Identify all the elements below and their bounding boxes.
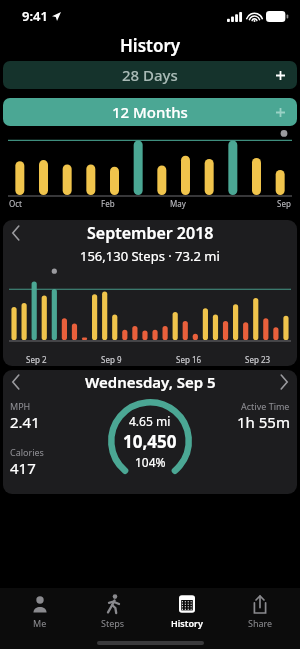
staticText: Active Time: [241, 400, 290, 412]
staticText: 2.41: [10, 412, 40, 432]
staticText: Sep 23: [245, 354, 271, 365]
button[interactable]: Previous month: [3, 220, 29, 246]
staticText: 156,130 Steps · 73.2 mi: [80, 247, 220, 265]
staticText: September 2018: [87, 222, 214, 244]
staticText: History: [171, 617, 203, 629]
staticText: 10,450: [123, 430, 177, 453]
staticText: MPH: [10, 400, 31, 412]
button[interactable]: Me: [7, 588, 73, 636]
button[interactable]: Next day: [271, 370, 297, 394]
button[interactable]: Share: [227, 588, 293, 636]
staticText: 1h 55m: [237, 412, 290, 432]
staticText: 4.65 mi: [129, 413, 171, 429]
button[interactable]: History: [154, 588, 220, 636]
staticText: 417: [10, 458, 36, 478]
staticText: 12 Months: [112, 102, 188, 122]
staticText: Me: [33, 617, 47, 629]
staticText: Feb: [101, 198, 115, 209]
staticText: Share: [248, 617, 273, 629]
staticText: 28 Days: [122, 65, 178, 85]
staticText: 104%: [135, 454, 166, 470]
staticText: Sep 2: [26, 354, 47, 365]
staticText: Oct: [9, 198, 22, 209]
staticText: Wednesday, Sep 5: [85, 372, 216, 392]
staticText: History: [120, 34, 181, 57]
staticText: Sep 16: [176, 354, 202, 365]
staticText: Calories: [10, 446, 44, 458]
staticText: Sep: [277, 198, 291, 209]
button[interactable]: 12 Months: [3, 98, 297, 126]
staticText: Steps: [101, 617, 125, 629]
staticText: Sep 9: [101, 354, 122, 365]
button[interactable]: 28 Days: [3, 61, 297, 89]
staticText: May: [170, 198, 186, 209]
button[interactable]: Previous day: [3, 370, 29, 394]
staticText: 9:41: [22, 7, 48, 25]
button[interactable]: Steps: [80, 588, 146, 636]
